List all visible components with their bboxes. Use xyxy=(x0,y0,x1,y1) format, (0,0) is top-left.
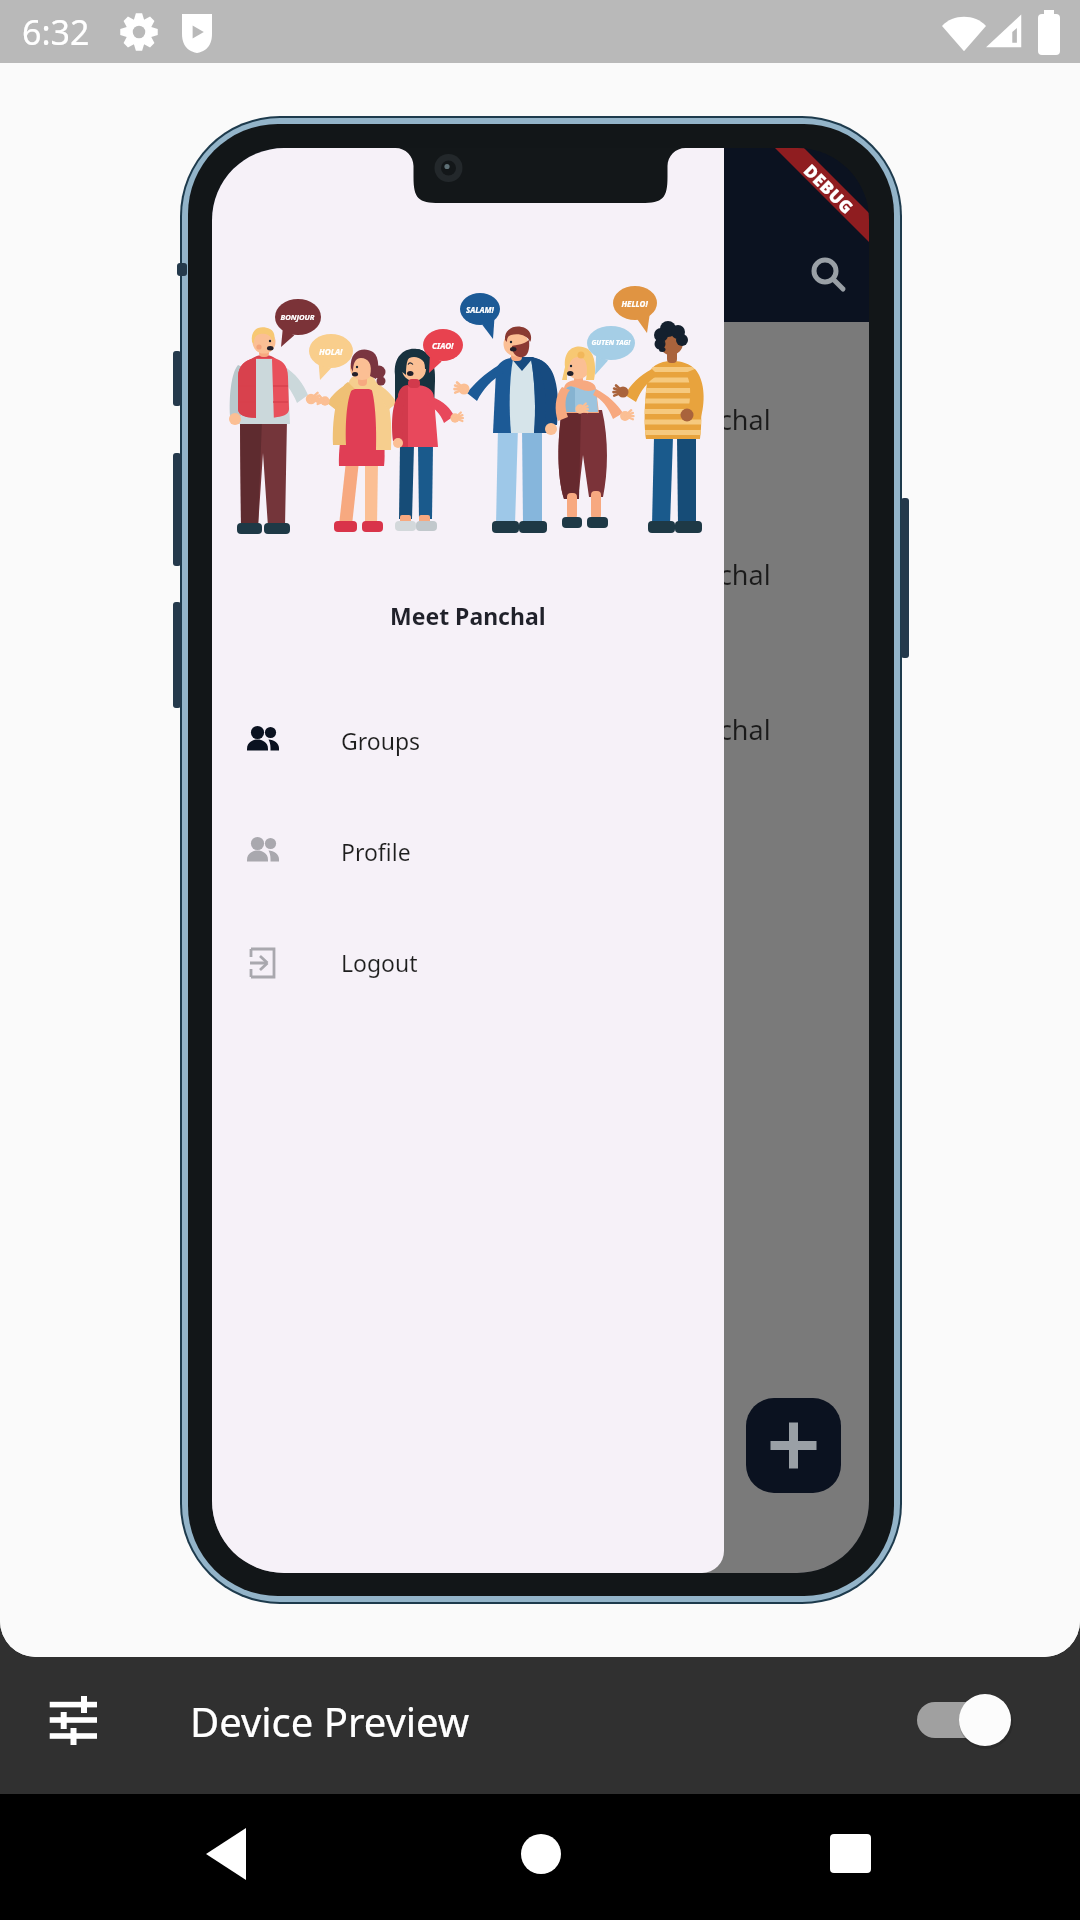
staticText: Meet Panchal xyxy=(599,556,771,593)
staticText: Meet Panchal xyxy=(599,711,771,748)
button[interactable]: Back xyxy=(176,1814,276,1894)
button[interactable]: Meet Panchal xyxy=(212,652,869,807)
button[interactable]: Logout xyxy=(212,907,724,1018)
button[interactable]: Add xyxy=(746,1398,841,1493)
button[interactable]: Groups xyxy=(212,685,724,796)
staticText: Device Preview xyxy=(190,1694,470,1748)
button[interactable]: Search xyxy=(793,239,857,303)
button[interactable]: Preview settings xyxy=(44,1691,104,1751)
staticText: 6:32 xyxy=(22,9,90,55)
button[interactable]: Device Preview xyxy=(190,1694,470,1748)
button[interactable]: Recent apps xyxy=(800,1814,900,1894)
staticText: Groups xyxy=(341,725,421,756)
button[interactable]: Toggle device preview xyxy=(911,1676,1017,1776)
staticText: Logout xyxy=(341,947,418,978)
staticText: Meet Panchal xyxy=(599,401,771,438)
staticText: Profile xyxy=(341,836,411,867)
button[interactable]: Meet Panchal xyxy=(212,497,869,652)
button[interactable]: Meet Panchal xyxy=(212,342,869,497)
button[interactable]: Home xyxy=(491,1814,591,1894)
button[interactable]: Profile xyxy=(212,796,724,907)
staticText: Meet Panchal xyxy=(390,600,546,631)
